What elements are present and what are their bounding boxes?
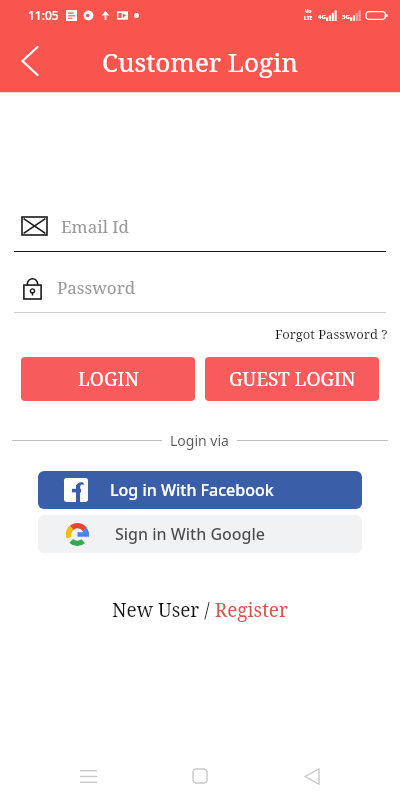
staticText: LOGIN [78,366,139,392]
button[interactable]: Password [0,269,400,313]
button[interactable]: Home [176,752,224,800]
button[interactable]: New User / Register [104,593,296,627]
button[interactable]: GUEST LOGIN [205,357,379,401]
staticText: Forgot Password ? [275,325,388,343]
staticText: Sign in With Google [115,523,266,545]
staticText: Password [57,276,136,299]
staticText: 4G [318,13,326,21]
staticText: New User / Register [112,597,288,623]
staticText: Log in With Facebook [110,479,274,501]
staticText: LTE [304,15,313,22]
button[interactable]: Email Id [0,208,400,252]
staticText: GUEST LOGIN [229,366,356,392]
button[interactable]: Log in With Facebook [38,471,362,509]
staticText: Customer Login [102,44,299,79]
button[interactable]: Sign in With Google [38,515,362,553]
staticText: 3G [342,13,350,21]
button[interactable]: Back [8,39,52,83]
staticText: Email Id [61,215,130,238]
button[interactable]: LOGIN [21,357,195,401]
staticText: Vo [305,8,312,15]
staticText: Login via [170,431,229,450]
button[interactable]: Back [288,752,336,800]
button[interactable]: Recent apps [64,752,112,800]
staticText: 11:05 [28,7,59,23]
button[interactable]: Forgot Password ? [275,323,400,345]
